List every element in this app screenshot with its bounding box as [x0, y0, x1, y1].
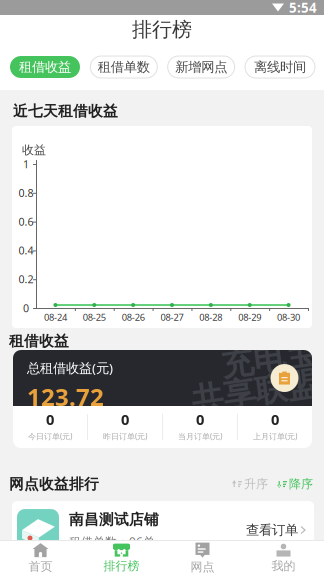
staticText: 08-30 — [277, 311, 300, 323]
staticText: 昨日订单(元) — [103, 431, 147, 442]
staticText: 0.2 — [18, 272, 33, 286]
staticText: 0 — [271, 409, 279, 429]
button[interactable]: 租借收益 — [10, 56, 80, 78]
staticText: 离线时间 — [254, 59, 306, 75]
staticText: 排行榜 — [103, 559, 139, 573]
staticText: 降序 — [289, 477, 313, 491]
button[interactable]: 新增网点 — [168, 56, 235, 78]
button[interactable]: 我的 — [243, 541, 324, 576]
staticText: 0 — [121, 409, 129, 429]
button[interactable]: 首页 — [0, 541, 81, 576]
staticText: 上月订单(元) — [253, 431, 297, 442]
staticText: 网点 — [190, 560, 214, 574]
button[interactable]: 南昌测试店铺 — [12, 501, 314, 547]
button[interactable]: 降序 — [277, 477, 313, 491]
staticText: 网点收益排行 — [9, 475, 99, 493]
staticText: 当月订单(元) — [178, 431, 222, 442]
staticText: 新增网点 — [175, 59, 227, 75]
staticText: 升序 — [244, 477, 268, 491]
staticText: 今日订单(元) — [28, 431, 72, 442]
staticText: 08-29 — [238, 311, 261, 323]
button[interactable]: 网点 — [162, 541, 243, 576]
button[interactable]: 排行榜 — [81, 541, 162, 576]
staticText: 1 — [23, 157, 29, 171]
button[interactable]: 租借单数 — [90, 56, 157, 78]
button[interactable]: 订单 — [270, 364, 298, 392]
staticText: 租借单数：96单 — [69, 534, 155, 549]
staticText: 我的 — [271, 559, 295, 573]
staticText: 0.4 — [18, 243, 33, 257]
staticText: 0 — [46, 409, 54, 429]
staticText: 租借单数 — [98, 59, 150, 75]
staticText: 首页 — [28, 559, 52, 574]
staticText: 近七天租借收益 — [13, 102, 118, 120]
staticText: 0.8 — [18, 186, 33, 200]
staticText: 08-25 — [83, 311, 106, 323]
staticText: 收益 — [22, 143, 46, 157]
staticText: 0.6 — [18, 214, 33, 229]
staticText: 5:54 — [289, 0, 317, 16]
button[interactable]: 离线时间 — [245, 56, 315, 78]
staticText: 0 — [196, 409, 204, 429]
staticText: 租借收益 — [19, 59, 71, 75]
staticText: 123.72 — [27, 381, 104, 413]
staticText: 08-27 — [160, 311, 183, 323]
staticText: 0 — [23, 301, 29, 315]
staticText: 08-24 — [44, 311, 67, 323]
button[interactable]: 升序 — [232, 477, 268, 491]
staticText: 08-28 — [199, 311, 222, 323]
staticText: 南昌测试店铺 — [69, 511, 159, 529]
staticText: 租借收益 — [9, 332, 69, 350]
staticText: 08-26 — [122, 311, 145, 323]
staticText: 充电宝 — [221, 339, 317, 379]
staticText: 共享联盟 — [191, 372, 319, 412]
staticText: 总租借收益(元) — [27, 359, 113, 377]
staticText: 排行榜 — [132, 17, 192, 42]
staticText: 查看订单 — [246, 522, 298, 538]
